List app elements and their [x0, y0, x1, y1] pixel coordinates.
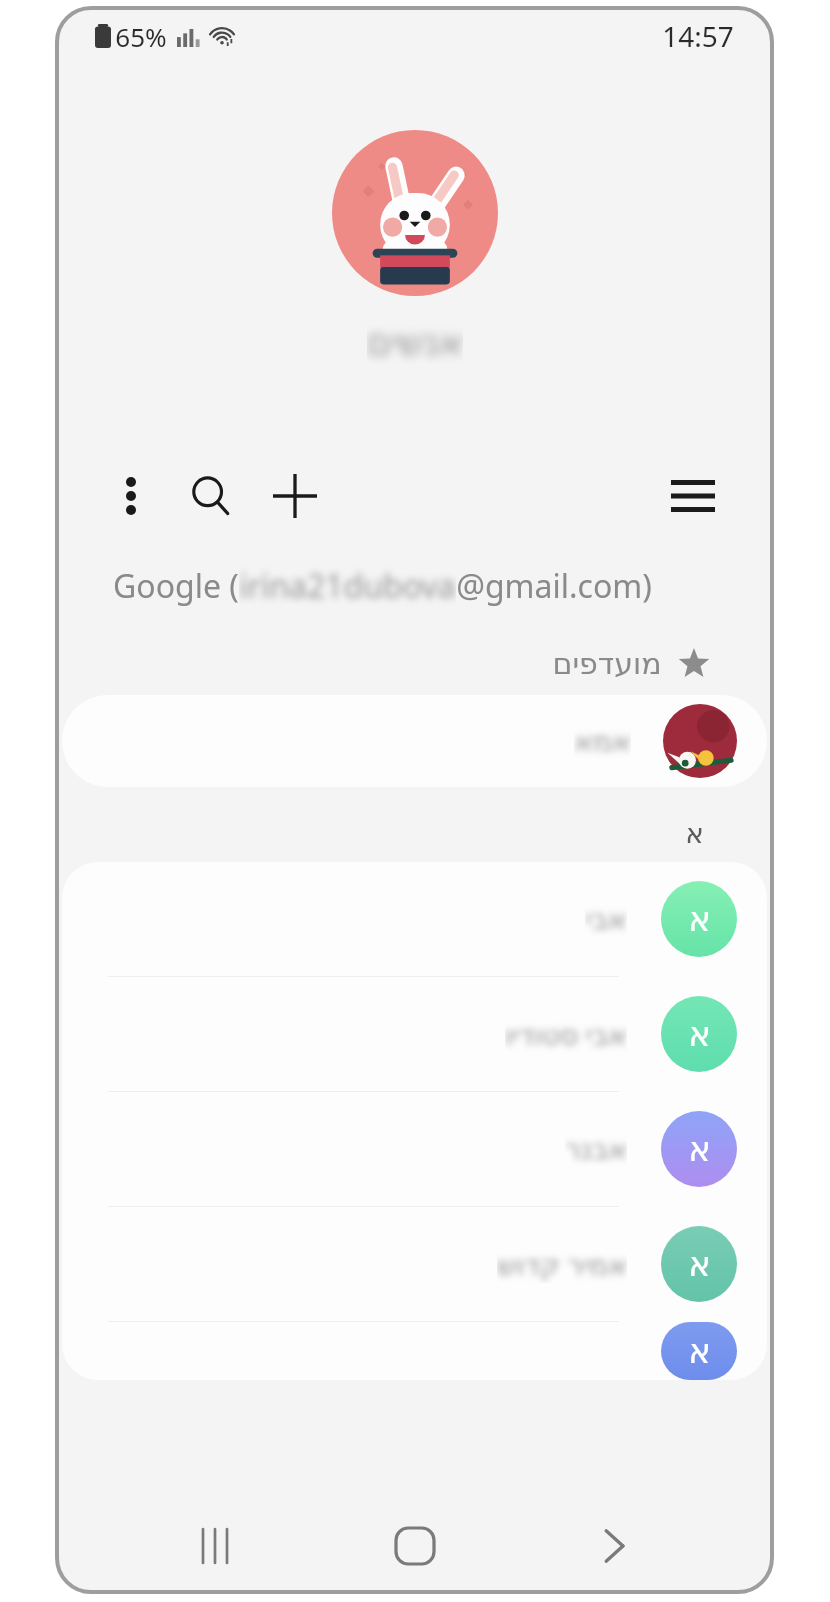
staticText: א — [688, 1129, 711, 1169]
staticText: אמיר קדוש — [497, 1245, 627, 1283]
staticText: @gmail.com) — [456, 564, 652, 608]
staticText: אבי סטודיו — [505, 1015, 627, 1053]
button[interactable]: More options — [103, 468, 159, 524]
button[interactable]: אבי — [62, 862, 767, 976]
button[interactable]: Back — [573, 1505, 655, 1587]
button[interactable]: א — [62, 1322, 767, 1380]
button[interactable]: Google ( — [57, 564, 708, 608]
staticText: Google ( — [113, 564, 239, 608]
button[interactable]: Home — [374, 1505, 456, 1587]
staticText: 65% — [115, 19, 167, 54]
button[interactable]: אמא — [62, 695, 767, 787]
staticText: irina21dubova — [239, 564, 456, 608]
staticText: אבי — [585, 903, 627, 936]
staticText: א — [688, 1331, 711, 1371]
button[interactable]: אבנר — [62, 1092, 767, 1206]
staticText: אמא — [574, 725, 631, 758]
button[interactable]: Recent apps — [174, 1505, 256, 1587]
staticText: 14:57 — [662, 17, 734, 55]
button[interactable]: אבי סטודיו — [62, 977, 767, 1091]
button[interactable]: Menu — [662, 465, 724, 527]
staticText: אנשים — [367, 322, 463, 364]
staticText: א — [685, 817, 704, 850]
staticText: א — [688, 1014, 711, 1054]
button[interactable]: Search — [181, 466, 241, 526]
staticText: אבנר — [565, 1133, 627, 1166]
staticText: א — [688, 1244, 711, 1284]
staticText: א — [688, 899, 711, 939]
button[interactable]: אמיר קדוש — [62, 1207, 767, 1321]
staticText: מועדפים — [552, 646, 662, 681]
button[interactable]: Add contact — [265, 466, 325, 526]
